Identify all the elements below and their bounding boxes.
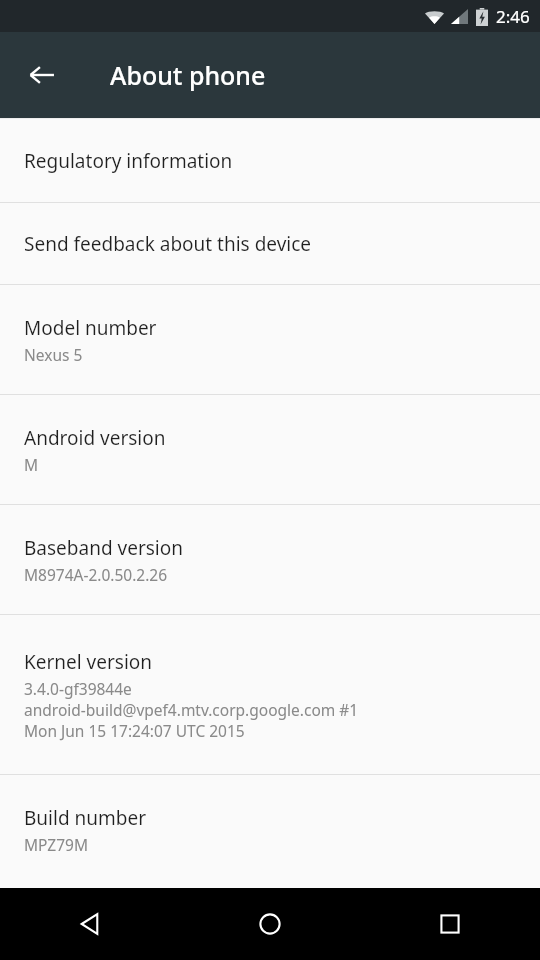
staticText: android-build@vpef4.mtv.corp.google.com … <box>24 699 359 720</box>
button[interactable]: Back <box>0 888 180 960</box>
button[interactable]: Model number <box>0 285 540 394</box>
staticText: Android version <box>24 425 166 451</box>
staticText: Build number <box>24 805 147 831</box>
button[interactable]: Build number <box>0 775 540 884</box>
staticText: Kernel version <box>24 649 153 675</box>
staticText: 2:46 <box>496 5 530 28</box>
button[interactable]: Back <box>14 47 70 103</box>
button[interactable]: Baseband version <box>0 505 540 614</box>
staticText: M <box>24 454 39 475</box>
button[interactable]: Regulatory information <box>0 119 540 202</box>
staticText: Regulatory information <box>24 148 233 174</box>
staticText: Model number <box>24 315 157 341</box>
staticText: Nexus 5 <box>24 344 83 365</box>
staticText: Mon Jun 15 17:24:07 UTC 2015 <box>24 720 245 741</box>
staticText: MPZ79M <box>24 834 88 855</box>
button[interactable]: Home <box>180 888 360 960</box>
button[interactable]: Kernel version <box>0 615 540 774</box>
button[interactable]: Android version <box>0 395 540 504</box>
button[interactable]: Recent apps <box>360 888 540 960</box>
staticText: 3.4.0-gf39844e <box>24 678 132 699</box>
staticText: Baseband version <box>24 535 183 561</box>
staticText: M8974A-2.0.50.2.26 <box>24 564 168 585</box>
staticText: Send feedback about this device <box>24 231 312 257</box>
button[interactable]: Send feedback about this device <box>0 203 540 284</box>
staticText: About phone <box>110 58 266 92</box>
